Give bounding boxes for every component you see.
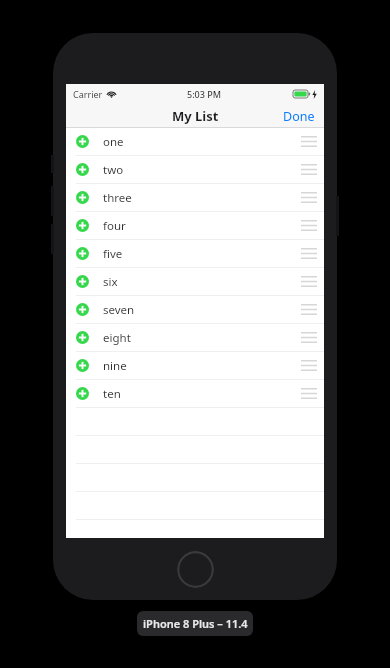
- staticText: three: [103, 190, 132, 206]
- staticText: one: [103, 134, 124, 150]
- staticText: 5:03 PM: [187, 88, 221, 100]
- staticText: Done: [283, 108, 315, 125]
- button[interactable]: Insert nine: [76, 359, 89, 372]
- button[interactable]: Insert ten: [66, 380, 324, 408]
- staticText: five: [103, 246, 123, 262]
- staticText: six: [103, 274, 118, 290]
- staticText: eight: [103, 330, 131, 346]
- button[interactable]: Reorder six: [301, 276, 317, 287]
- button[interactable]: Insert eight: [66, 324, 324, 352]
- button[interactable]: Done: [283, 108, 315, 125]
- staticText: two: [103, 162, 124, 178]
- button[interactable]: Insert three: [66, 184, 324, 212]
- button[interactable]: Insert ten: [76, 387, 89, 400]
- button[interactable]: Reorder ten: [301, 388, 317, 399]
- button[interactable]: Home: [177, 551, 214, 588]
- button[interactable]: Reorder five: [301, 248, 317, 259]
- button[interactable]: Insert two: [76, 163, 89, 176]
- button[interactable]: Reorder two: [301, 164, 317, 175]
- button[interactable]: Insert two: [66, 156, 324, 184]
- button[interactable]: Insert one: [76, 135, 89, 148]
- button[interactable]: Insert six: [66, 268, 324, 296]
- button[interactable]: Insert five: [76, 247, 89, 260]
- staticText: Carrier: [73, 88, 103, 100]
- staticText: iPhone 8 Plus – 11.4: [143, 616, 248, 631]
- staticText: My List: [172, 107, 219, 125]
- staticText: four: [103, 218, 126, 234]
- staticText: nine: [103, 358, 127, 374]
- button[interactable]: Insert four: [76, 219, 89, 232]
- button[interactable]: Insert four: [66, 212, 324, 240]
- button[interactable]: Insert five: [66, 240, 324, 268]
- button[interactable]: Reorder eight: [301, 332, 317, 343]
- button[interactable]: Insert seven: [76, 303, 89, 316]
- button[interactable]: Insert seven: [66, 296, 324, 324]
- button[interactable]: Reorder four: [301, 220, 317, 231]
- staticText: seven: [103, 302, 135, 318]
- button[interactable]: Insert three: [76, 191, 89, 204]
- button[interactable]: Reorder seven: [301, 304, 317, 315]
- button[interactable]: Reorder three: [301, 192, 317, 203]
- button[interactable]: iPhone 8 Plus – 11.4: [137, 611, 253, 636]
- button[interactable]: Insert eight: [76, 331, 89, 344]
- button[interactable]: Reorder one: [301, 136, 317, 147]
- button[interactable]: Insert six: [76, 275, 89, 288]
- button[interactable]: Insert one: [66, 128, 324, 156]
- button[interactable]: Reorder nine: [301, 360, 317, 371]
- staticText: ten: [103, 386, 121, 402]
- button[interactable]: Insert nine: [66, 352, 324, 380]
